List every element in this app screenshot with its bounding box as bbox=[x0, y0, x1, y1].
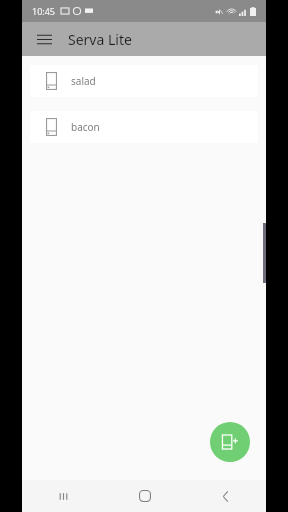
button[interactable]: Recent apps bbox=[22, 480, 104, 512]
staticText: Serva Lite bbox=[68, 30, 132, 49]
button[interactable]: bacon bbox=[30, 111, 258, 143]
staticText: 10:45 bbox=[32, 5, 56, 17]
button[interactable]: Add device bbox=[210, 422, 250, 462]
button[interactable]: Back bbox=[185, 480, 266, 512]
button[interactable]: Open navigation menu bbox=[30, 25, 58, 53]
staticText: bacon bbox=[71, 120, 100, 134]
staticText: salad bbox=[71, 74, 96, 88]
button[interactable]: Home bbox=[104, 480, 185, 512]
button[interactable]: salad bbox=[30, 65, 258, 97]
